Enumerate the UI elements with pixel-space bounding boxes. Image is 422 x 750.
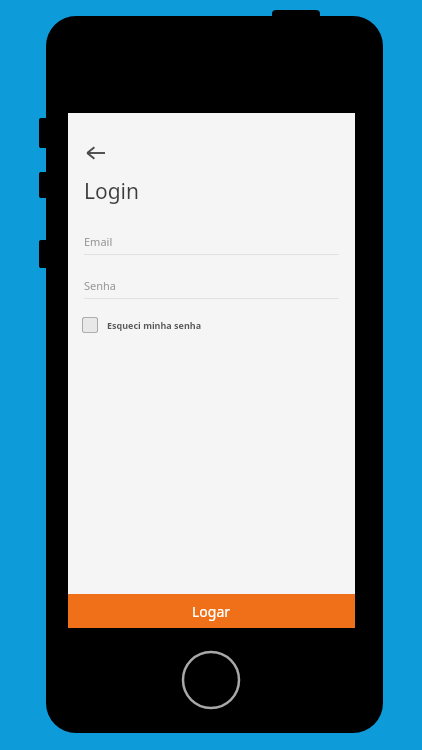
button[interactable]: Home	[181, 650, 241, 710]
button[interactable]: Back	[78, 135, 114, 171]
staticText: Esqueci minha senha	[107, 319, 202, 331]
staticText: Senha	[84, 278, 117, 293]
button[interactable]: Email	[84, 228, 339, 255]
staticText: Login	[84, 177, 140, 206]
button[interactable]: Senha	[84, 272, 339, 299]
staticText: Email	[84, 234, 113, 249]
staticText: Logar	[192, 602, 231, 621]
button[interactable]: Logar	[68, 594, 355, 628]
button[interactable]: Esqueci minha senha	[80, 315, 202, 335]
